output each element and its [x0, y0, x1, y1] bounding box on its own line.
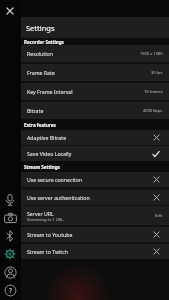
- staticText: 1920 x 1080: [140, 51, 163, 56]
- staticText: Stream to Youtube: [27, 231, 73, 238]
- button[interactable]: Stream to Twitch: [21, 244, 169, 259]
- staticText: Stream to Twitch: [27, 248, 68, 255]
- button[interactable]: Bitrate: [21, 102, 169, 119]
- button[interactable]: Stream to Youtube: [21, 227, 169, 242]
- button[interactable]: Use secure connection: [21, 172, 169, 187]
- staticText: Resolution: [27, 50, 53, 57]
- staticText: Frame Rate: [27, 69, 55, 76]
- staticText: Key Frame Interval: [27, 88, 73, 95]
- staticText: Save Video Locally: [27, 150, 72, 157]
- button[interactable]: [2, 3, 17, 18]
- staticText: Use secure connection: [27, 176, 82, 183]
- staticText: Use server authentication: [27, 194, 90, 201]
- staticText: ?: [9, 286, 13, 295]
- button[interactable]: Settings: [21, 17, 169, 38]
- button[interactable]: [3, 193, 17, 207]
- button[interactable]: Frame Rate: [21, 64, 169, 81]
- button[interactable]: ?: [3, 283, 17, 297]
- staticText: 15 frames: [144, 89, 163, 94]
- button[interactable]: [3, 211, 17, 225]
- staticText: Bitrate: [27, 107, 44, 114]
- staticText: Server URL: [27, 210, 54, 217]
- button[interactable]: Save Video Locally: [21, 146, 169, 161]
- button[interactable]: [3, 247, 17, 261]
- staticText: 30 fps: [151, 70, 163, 75]
- button[interactable]: Server URL: [21, 206, 169, 225]
- button[interactable]: [3, 229, 17, 243]
- staticText: 4000 kbps: [143, 108, 163, 113]
- staticText: Recorder Settings: [24, 39, 64, 45]
- staticText: Extra features: [24, 122, 56, 128]
- button[interactable]: Use server authentication: [21, 190, 169, 205]
- staticText: Adaptive Bitrate: [27, 134, 67, 141]
- button[interactable]: Resolution: [21, 45, 169, 62]
- button[interactable]: Adaptive Bitrate: [21, 130, 169, 145]
- button[interactable]: [3, 265, 17, 279]
- staticText: Streaming to 1 URL.: [27, 217, 65, 222]
- staticText: Settings: [26, 23, 55, 33]
- button[interactable]: Key Frame Interval: [21, 83, 169, 100]
- staticText: Edit: [155, 213, 163, 218]
- staticText: Stream Settings: [24, 164, 60, 170]
